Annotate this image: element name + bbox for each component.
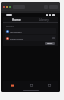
- button[interactable]: Open: [45, 42, 55, 45]
- staticText: Home: [12, 18, 21, 22]
- button[interactable]: Profile: [40, 81, 58, 89]
- staticText: Open: [47, 42, 53, 45]
- button[interactable]: Downloads: [5, 35, 56, 41]
- staticText: Library: [39, 18, 49, 22]
- button[interactable]: Messages: [5, 28, 56, 34]
- button[interactable]: Home: [3, 17, 30, 22]
- button[interactable]: Home: [3, 81, 22, 89]
- staticText: Recent: [6, 24, 15, 27]
- staticText: Messages: [10, 30, 55, 33]
- button[interactable]: Search: [22, 81, 40, 89]
- staticText: Downloads: [10, 37, 52, 40]
- button[interactable]: Library: [30, 17, 58, 22]
